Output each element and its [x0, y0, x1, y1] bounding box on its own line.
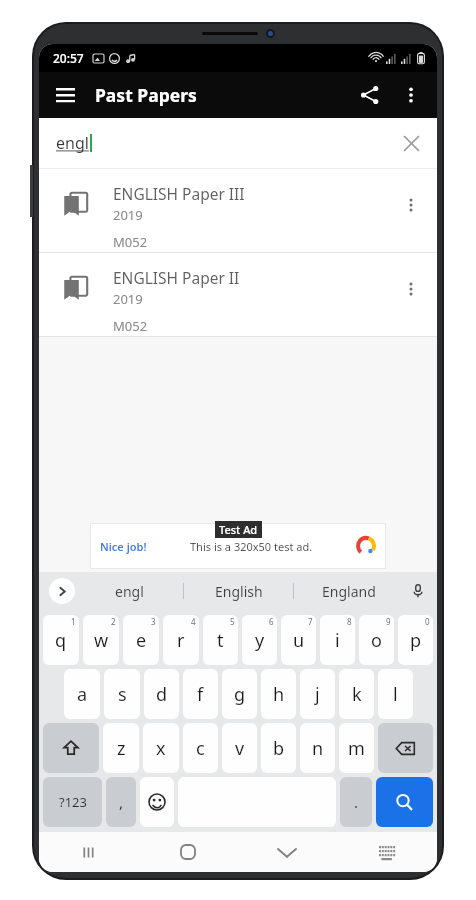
button[interactable]: x	[143, 723, 179, 773]
button[interactable]: v	[222, 723, 257, 773]
button[interactable]: q	[43, 615, 79, 665]
button[interactable]: u	[281, 615, 316, 665]
staticText: ?123	[59, 793, 87, 811]
button[interactable]: k	[339, 669, 374, 719]
staticText: This is a 320x50 test ad.	[190, 539, 313, 554]
staticText: p	[410, 628, 422, 653]
button[interactable]: Shift	[43, 723, 99, 773]
button[interactable]: ENGLISH Paper III	[39, 169, 437, 252]
button[interactable]: Share	[349, 74, 391, 116]
button[interactable]: i	[320, 615, 355, 665]
staticText: a	[77, 682, 88, 707]
staticText: Test Ad	[219, 522, 258, 537]
button[interactable]: More options for ENGLISH Paper III	[391, 185, 431, 225]
staticText: d	[156, 682, 168, 707]
button[interactable]: g	[222, 669, 257, 719]
staticText: 20:57	[53, 50, 84, 66]
button[interactable]: Voice input	[403, 576, 433, 606]
staticText: z	[117, 736, 126, 761]
button[interactable]: Backspace	[378, 723, 433, 773]
staticText: j	[315, 682, 320, 707]
staticText: Past Papers	[95, 83, 197, 107]
staticText: v	[235, 736, 245, 761]
button[interactable]: More options for ENGLISH Paper II	[391, 269, 431, 309]
button[interactable]: a	[64, 669, 100, 719]
staticText: g	[234, 682, 246, 707]
staticText: l	[393, 682, 398, 707]
button[interactable]: b	[261, 723, 296, 773]
button[interactable]: Recent apps	[39, 832, 138, 872]
staticText: 2	[111, 616, 116, 627]
staticText: Nice job!	[100, 539, 147, 554]
staticText: 7	[308, 616, 313, 627]
staticText: 2019	[113, 206, 143, 224]
button[interactable]: m	[339, 723, 374, 773]
button[interactable]: English	[184, 572, 293, 610]
staticText: i	[335, 628, 340, 653]
button[interactable]: o	[359, 615, 394, 665]
button[interactable]: More options	[391, 75, 431, 115]
staticText: ,	[119, 792, 124, 812]
staticText: M052	[113, 317, 148, 335]
staticText: x	[156, 736, 166, 761]
staticText: w	[94, 628, 109, 653]
button[interactable]: England	[294, 572, 403, 610]
staticText: c	[196, 736, 205, 761]
staticText: 6	[269, 616, 274, 627]
staticText: .	[354, 792, 359, 812]
button[interactable]: Switch keyboard	[337, 832, 437, 872]
staticText: 5	[230, 616, 235, 627]
button[interactable]: Emoji	[140, 777, 174, 827]
staticText: 2019	[113, 290, 143, 308]
button[interactable]: j	[300, 669, 335, 719]
button[interactable]: f	[183, 669, 218, 719]
staticText: engl	[115, 582, 144, 601]
staticText: England	[322, 582, 376, 601]
button[interactable]: e	[123, 615, 159, 665]
button[interactable]: w	[83, 615, 119, 665]
staticText: y	[255, 628, 265, 653]
staticText: M052	[113, 233, 148, 251]
staticText: q	[55, 628, 67, 653]
button[interactable]: d	[144, 669, 179, 719]
button[interactable]: Home	[138, 832, 237, 872]
staticText: 8	[347, 616, 352, 627]
staticText: n	[312, 736, 324, 761]
button[interactable]: Open navigation drawer	[45, 75, 85, 115]
button[interactable]: Hide keyboard	[237, 832, 337, 872]
button[interactable]: Expand toolbar	[49, 578, 75, 604]
staticText: h	[273, 682, 285, 707]
button[interactable]: c	[183, 723, 218, 773]
staticText: k	[352, 682, 362, 707]
button[interactable]: ,	[106, 777, 136, 827]
button[interactable]: ENGLISH Paper II	[39, 253, 437, 336]
button[interactable]: n	[300, 723, 335, 773]
button[interactable]: .	[340, 777, 372, 827]
staticText: 1	[71, 616, 76, 627]
button[interactable]: s	[104, 669, 140, 719]
staticText: b	[273, 736, 285, 761]
button[interactable]: l	[378, 669, 413, 719]
button[interactable]: Clear search	[391, 123, 431, 163]
staticText: 9	[386, 616, 391, 627]
button[interactable]: z	[103, 723, 139, 773]
staticText: e	[136, 628, 147, 653]
button[interactable]: Nice job!	[90, 523, 386, 569]
button[interactable]: r	[163, 615, 199, 665]
staticText: 0	[425, 616, 430, 627]
staticText: engl	[56, 132, 89, 154]
button[interactable]: p	[398, 615, 433, 665]
button[interactable]: h	[261, 669, 296, 719]
staticText: ENGLISH Paper III	[113, 183, 245, 204]
staticText: English	[215, 582, 263, 601]
button[interactable]: engl	[75, 572, 183, 610]
staticText: 4	[191, 616, 196, 627]
staticText: f	[197, 682, 204, 707]
staticText: m	[348, 736, 365, 761]
button[interactable]: y	[242, 615, 277, 665]
button[interactable]: ?123	[43, 777, 102, 827]
staticText: 3	[151, 616, 156, 627]
button[interactable]: Search	[376, 777, 433, 827]
button[interactable]: t	[203, 615, 238, 665]
